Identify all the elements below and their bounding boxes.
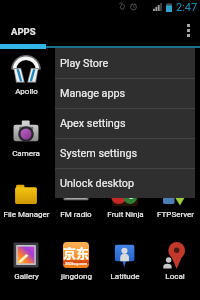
staticText: Play Store [60, 57, 109, 70]
button[interactable] [150, 53, 200, 115]
staticText: Fruit Ninja [107, 210, 144, 219]
staticText: FTPServer [157, 210, 194, 219]
button[interactable]: File Manager [1, 176, 51, 238]
button[interactable]: Gallery [1, 238, 51, 300]
button[interactable] [51, 115, 101, 177]
button[interactable]: More options [176, 14, 200, 47]
staticText: FM radio [60, 210, 92, 219]
button[interactable]: Fruit Ninja [100, 176, 150, 238]
staticText: Local [165, 272, 185, 281]
staticText: Unlock desktop [60, 177, 135, 190]
button[interactable]: Unlock desktop [55, 169, 195, 198]
staticText: 京东 [63, 243, 89, 262]
button[interactable]: 京东 [51, 238, 101, 300]
staticText: Manage apps [60, 87, 126, 100]
button[interactable]: Latitude [100, 238, 150, 300]
button[interactable]: System settings [55, 139, 195, 168]
button[interactable] [51, 53, 101, 115]
staticText: 2:47 [176, 1, 198, 14]
button[interactable]: Apollo [1, 53, 51, 115]
button[interactable]: Manage apps [55, 79, 195, 108]
button[interactable]: Camera [1, 115, 51, 177]
button[interactable]: FTPServer [150, 176, 200, 238]
staticText: 360buy.com [65, 261, 88, 266]
button[interactable] [150, 115, 200, 177]
button[interactable] [100, 53, 150, 115]
staticText: System settings [60, 147, 138, 160]
staticText: Apollo [15, 87, 38, 96]
button[interactable] [100, 115, 150, 177]
staticText: Latitude [110, 272, 140, 281]
staticText: APPS [11, 26, 36, 37]
button[interactable]: Play Store [55, 48, 195, 78]
button[interactable]: FM radio [51, 176, 101, 238]
staticText: Apex settings [60, 117, 126, 130]
button[interactable]: Local [150, 238, 200, 300]
staticText: jingdong [61, 272, 92, 281]
button[interactable]: APPS [0, 14, 46, 47]
staticText: Camera [12, 149, 40, 158]
button[interactable]: Apex settings [55, 109, 195, 138]
staticText: Gallery [14, 272, 39, 281]
staticText: File Manager [3, 210, 50, 219]
